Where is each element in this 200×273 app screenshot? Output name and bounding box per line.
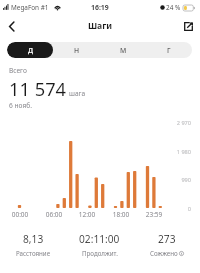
button[interactable]: 273	[133, 232, 200, 254]
staticText: 990	[151, 176, 191, 184]
staticText: Расстояние	[16, 249, 51, 257]
staticText: 18:00	[106, 210, 136, 219]
staticText: 16:19	[91, 3, 109, 12]
button[interactable]: Share	[180, 16, 196, 36]
button[interactable]: 8,13	[0, 232, 66, 254]
staticText: Всего	[9, 66, 27, 75]
staticText: 00:00	[5, 210, 35, 219]
staticText: шага	[69, 89, 86, 98]
staticText: MegaFon #1	[11, 3, 49, 12]
staticText: 12:00	[72, 210, 102, 219]
staticText: 2 970	[151, 119, 191, 127]
staticText: М	[120, 46, 127, 55]
staticText: Сожжено	[150, 249, 178, 257]
button[interactable]: 02:11:00	[66, 232, 133, 254]
staticText: Г	[167, 46, 171, 55]
staticText: 23:59	[139, 210, 169, 219]
button[interactable]: Back	[4, 16, 20, 36]
button[interactable]: Н	[54, 42, 100, 58]
button[interactable]: Г	[146, 42, 192, 58]
staticText: 06:00	[39, 210, 69, 219]
staticText: Н	[74, 46, 80, 55]
staticText: 02:11:00	[79, 232, 120, 246]
staticText: 8,13	[23, 232, 44, 246]
staticText: 11 574	[9, 76, 67, 101]
button[interactable]: Д	[7, 42, 54, 58]
staticText: 1 980	[151, 148, 191, 156]
button[interactable]: М	[100, 42, 146, 58]
staticText: 6 нояб.	[9, 101, 32, 110]
staticText: 273	[158, 232, 176, 246]
staticText: Д	[28, 46, 34, 55]
staticText: 24 %	[166, 3, 181, 12]
staticText: Продолжит.	[82, 249, 118, 257]
staticText: Шаги	[0, 20, 200, 32]
staticText: 0	[151, 205, 191, 213]
